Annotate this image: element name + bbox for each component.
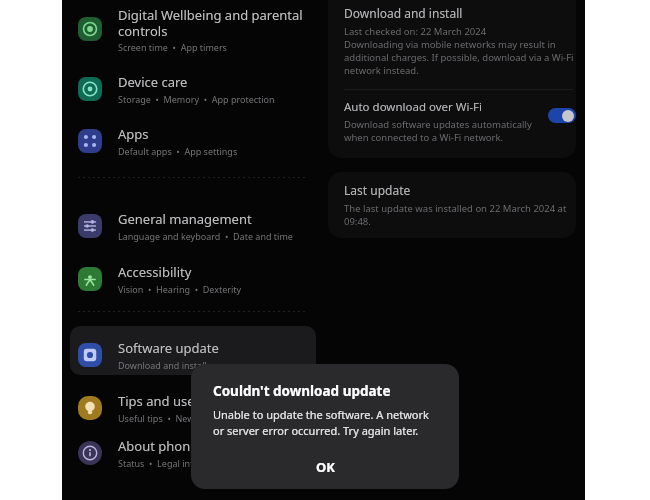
staticText: OK — [316, 458, 335, 476]
button[interactable]: Device care — [70, 66, 316, 112]
button[interactable]: Auto download over Wi-Fi — [344, 99, 576, 144]
staticText: Apps — [118, 125, 149, 143]
button[interactable]: Digital Wellbeing and parental controls — [70, 0, 316, 58]
staticText: General management — [118, 210, 252, 228]
staticText: Accessibility — [118, 263, 192, 281]
staticText: Software update — [118, 339, 219, 357]
staticText: Status • Legal information — [118, 457, 233, 469]
button[interactable]: OK — [294, 453, 357, 481]
button[interactable]: Software update — [70, 332, 316, 378]
staticText: Tips and user manual — [118, 392, 250, 410]
button[interactable]: Tips and user manual — [70, 385, 316, 431]
staticText: Screen time • App timers — [118, 41, 227, 53]
staticText: Vision • Hearing • Dexterity — [118, 283, 242, 295]
staticText: About phone — [118, 437, 198, 455]
staticText: Downloading via mobile networks may resu… — [344, 38, 574, 77]
staticText: Storage • Memory • App protection — [118, 93, 275, 105]
staticText: Useful tips • New features — [118, 412, 232, 424]
staticText: The last update was installed on 22 Marc… — [344, 202, 572, 228]
button[interactable]: General management — [70, 203, 316, 249]
staticText: Last update — [344, 182, 411, 198]
button[interactable]: Apps — [70, 118, 316, 164]
staticText: Last checked on: 22 March 2024 — [344, 25, 487, 38]
staticText: Download and install — [118, 359, 207, 371]
staticText: Unable to update the software. A network… — [213, 407, 437, 439]
button[interactable]: Accessibility — [70, 256, 316, 302]
staticText: Download and install — [344, 5, 463, 21]
staticText: Couldn't download update — [213, 382, 391, 400]
button[interactable] — [328, 172, 576, 238]
staticText: Device care — [118, 73, 188, 91]
button[interactable]: Auto download over Wi-Fi toggle — [548, 108, 576, 123]
staticText: Download software updates automatically … — [344, 118, 542, 144]
button[interactable]: About phone — [70, 430, 316, 476]
staticText: Auto download over Wi-Fi — [344, 99, 483, 115]
staticText: Digital Wellbeing and parental controls — [118, 6, 303, 39]
staticText: Default apps • App settings — [118, 145, 238, 157]
staticText: Language and keyboard • Date and time — [118, 230, 293, 242]
button[interactable] — [70, 326, 316, 375]
